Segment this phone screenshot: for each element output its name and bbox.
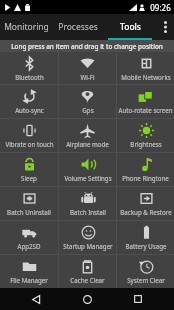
button[interactable]: Brightness: [117, 119, 174, 152]
staticText: Phone Ringtone: [122, 174, 169, 182]
button[interactable]: Monitoring: [0, 14, 52, 40]
staticText: Airplane mode: [66, 140, 109, 148]
staticText: Wi-Fi: [80, 73, 95, 81]
button[interactable]: Back: [21, 288, 51, 310]
staticText: Long press an item and drag it to change…: [11, 42, 163, 51]
staticText: Gps: [82, 106, 94, 114]
button[interactable]: Sleep: [0, 153, 58, 186]
staticText: Backup & Restore: [120, 208, 172, 216]
staticText: App2SD: [17, 242, 41, 250]
button[interactable]: Processes: [52, 14, 104, 40]
staticText: Mobile Networks: [121, 73, 171, 81]
button[interactable]: Startup Manager: [59, 221, 116, 254]
button[interactable]: Cache Clear: [59, 255, 116, 288]
staticText: Batch Install: [70, 208, 106, 216]
staticText: Auto-rotate screen: [118, 106, 173, 114]
button[interactable]: Backup & Restore: [117, 187, 174, 220]
button[interactable]: Bluetooth: [0, 52, 58, 84]
staticText: System Clear: [127, 276, 165, 284]
button[interactable]: Auto-sync: [0, 85, 58, 118]
staticText: Monitoring: [4, 21, 49, 33]
button[interactable]: Vibrate on touch: [0, 119, 58, 152]
button[interactable]: Tools: [104, 14, 156, 40]
staticText: File Manager: [10, 276, 48, 284]
button[interactable]: Battery Usage: [117, 221, 174, 254]
button[interactable]: Recent apps: [123, 288, 153, 310]
staticText: Cache Clear: [70, 276, 105, 284]
staticText: Batch Uninstall: [7, 208, 51, 216]
staticText: Vibrate on touch: [5, 140, 54, 148]
staticText: Brightness: [130, 140, 162, 148]
button[interactable]: Home: [72, 288, 102, 310]
staticText: Bluetooth: [15, 73, 44, 81]
button[interactable]: Airplane mode: [59, 119, 116, 152]
staticText: Volume Settings: [64, 174, 112, 182]
staticText: 09:26: [150, 2, 171, 13]
button[interactable]: Auto-rotate screen: [117, 85, 174, 118]
button[interactable]: Batch Uninstall: [0, 187, 58, 220]
button[interactable]: App2SD: [0, 221, 58, 254]
button[interactable]: System Clear: [117, 255, 174, 288]
staticText: Auto-sync: [15, 106, 44, 114]
staticText: Battery Usage: [125, 242, 167, 250]
button[interactable]: Volume Settings: [59, 153, 116, 186]
staticText: Sleep: [21, 174, 37, 182]
button[interactable]: Wi-Fi: [59, 52, 116, 84]
button[interactable]: Batch Install: [59, 187, 116, 220]
button[interactable]: Phone Ringtone: [117, 153, 174, 186]
button[interactable]: Gps: [59, 85, 116, 118]
staticText: Processes: [58, 21, 98, 33]
staticText: Startup Manager: [63, 242, 113, 250]
button[interactable]: File Manager: [0, 255, 58, 288]
staticText: Tools: [120, 21, 141, 33]
button[interactable]: Mobile Networks: [117, 52, 174, 84]
button[interactable]: More options: [156, 14, 174, 40]
